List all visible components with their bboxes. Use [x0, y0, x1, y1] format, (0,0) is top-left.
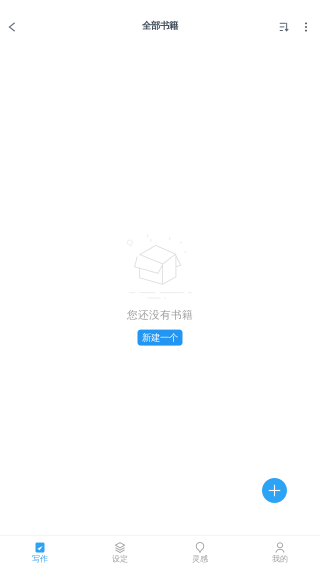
staticText: 写作 [32, 554, 48, 564]
staticText: 您还没有书籍 [127, 308, 193, 322]
button[interactable]: 设定 [80, 536, 160, 568]
button[interactable]: 我的 [240, 536, 320, 568]
button[interactable]: Sort [271, 10, 297, 44]
staticText: 我的 [272, 554, 288, 564]
staticText: 全部书籍 [142, 20, 178, 31]
staticText: 新建一个 [142, 332, 178, 343]
staticText: 灵感 [192, 554, 208, 564]
staticText: 设定 [112, 554, 128, 564]
button[interactable]: 写作 [0, 536, 80, 568]
button[interactable]: New book [262, 478, 287, 503]
button[interactable]: 新建一个 [137, 330, 182, 346]
button[interactable]: More [295, 10, 317, 44]
button[interactable]: 灵感 [160, 536, 240, 568]
button[interactable]: Back [0, 10, 27, 44]
